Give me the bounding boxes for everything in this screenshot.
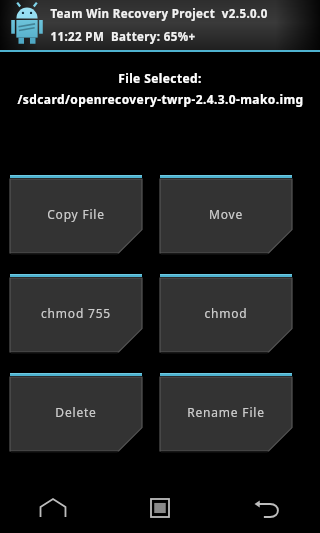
other: TWRP logo [8, 3, 46, 47]
button[interactable]: Back [213, 483, 320, 533]
staticText: Copy File [47, 206, 105, 222]
button[interactable]: Delete [10, 373, 142, 451]
staticText: File Selected: [118, 70, 202, 86]
button[interactable]: chmod 755 [10, 274, 142, 352]
button[interactable]: chmod [160, 274, 292, 352]
staticText: /sdcard/openrecovery-twrp-2.4.3.0-mako.i… [17, 91, 304, 107]
staticText: 11:22 PM Battery: 65%+ [50, 29, 196, 45]
staticText: Delete [55, 404, 97, 420]
staticText: chmod [204, 305, 248, 321]
staticText: Rename File [187, 404, 265, 420]
button[interactable]: Recent apps [106, 483, 213, 533]
staticText: chmod 755 [41, 305, 111, 321]
button[interactable]: Rename File [160, 373, 292, 451]
button[interactable]: Copy File [10, 175, 142, 253]
button[interactable]: Move [160, 175, 292, 253]
button[interactable]: Home [0, 483, 106, 533]
staticText: Move [209, 206, 243, 222]
staticText: Team Win Recovery Project v2.5.0.0 [50, 6, 268, 22]
